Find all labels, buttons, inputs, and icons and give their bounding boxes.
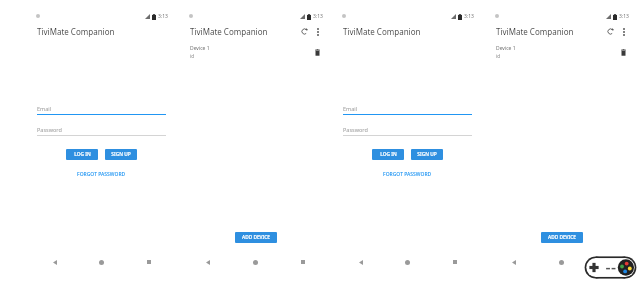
button[interactable]: SIGN UP: [105, 149, 137, 160]
button[interactable]: Device 1: [490, 44, 633, 60]
button[interactable]: Email: [343, 105, 472, 115]
button[interactable]: FORGOT PASSWORD: [73, 169, 130, 180]
staticText: 3:13: [464, 13, 474, 20]
button[interactable]: Back: [490, 252, 537, 272]
staticText: LOG IN: [74, 151, 91, 158]
button[interactable]: Recent apps: [279, 252, 327, 272]
staticText: TiviMate Companion: [496, 26, 574, 37]
button[interactable]: Home: [78, 252, 125, 272]
button[interactable]: Back: [337, 252, 384, 272]
button[interactable]: Delete device: [312, 47, 322, 57]
button[interactable]: More options: [618, 26, 629, 37]
staticText: SIGN UP: [417, 151, 437, 158]
button[interactable]: Refresh: [298, 25, 310, 37]
button[interactable]: FORGOT PASSWORD: [379, 169, 436, 180]
button[interactable]: Email: [37, 105, 166, 115]
button[interactable]: Home: [537, 252, 585, 272]
button[interactable]: More options: [312, 26, 323, 37]
staticText: 3:13: [619, 13, 629, 20]
button[interactable]: Device 1: [184, 44, 327, 60]
button[interactable]: Recent apps: [431, 252, 478, 272]
staticText: TiviMate Companion: [190, 26, 268, 37]
staticText: SIGN UP: [111, 151, 131, 158]
button[interactable]: LOG IN: [372, 149, 404, 160]
staticText: id: [190, 53, 194, 59]
button[interactable]: SIGN UP: [411, 149, 443, 160]
button[interactable]: ADD DEVICE: [541, 232, 583, 243]
staticText: LOG IN: [380, 151, 397, 158]
staticText: Email: [37, 105, 52, 112]
button[interactable]: Back: [31, 252, 78, 272]
staticText: id: [496, 53, 500, 59]
staticText: Device 1: [190, 45, 210, 52]
button[interactable]: Password: [343, 126, 472, 136]
staticText: 3:13: [313, 13, 323, 20]
staticText: FORGOT PASSWORD: [383, 171, 432, 178]
staticText: ADD DEVICE: [242, 234, 270, 241]
button[interactable]: Recent apps: [125, 252, 172, 272]
button[interactable]: Refresh: [604, 25, 616, 37]
button[interactable]: Back: [184, 252, 231, 272]
button[interactable]: Recent apps: [585, 252, 633, 272]
button[interactable]: ADD DEVICE: [235, 232, 277, 243]
staticText: Email: [343, 105, 358, 112]
staticText: 3:13: [158, 13, 168, 20]
staticText: Password: [37, 126, 62, 133]
staticText: Device 1: [496, 45, 516, 52]
button[interactable]: Password: [37, 126, 166, 136]
staticText: TiviMate Companion: [37, 26, 115, 37]
button[interactable]: Home: [231, 252, 279, 272]
staticText: TiviMate Companion: [343, 26, 421, 37]
button[interactable]: Home: [384, 252, 431, 272]
button[interactable]: Delete device: [618, 47, 628, 57]
button[interactable]: LOG IN: [66, 149, 98, 160]
staticText: Password: [343, 126, 368, 133]
staticText: FORGOT PASSWORD: [77, 171, 126, 178]
staticText: ADD DEVICE: [548, 234, 576, 241]
